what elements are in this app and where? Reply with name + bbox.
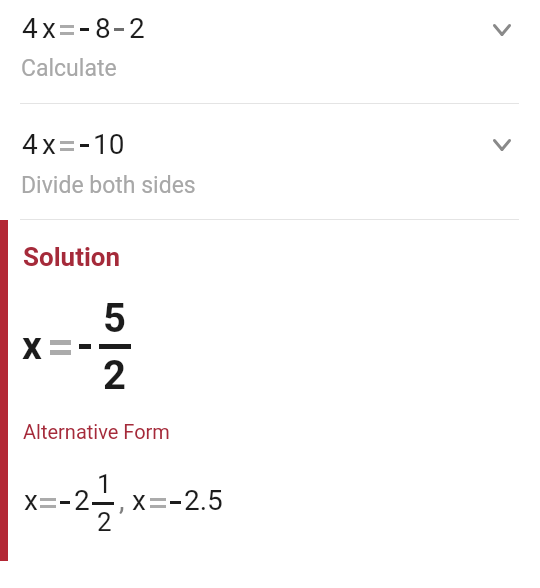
- staticText: ,: [119, 484, 125, 517]
- staticText: x: [24, 484, 38, 517]
- staticText: 2: [103, 352, 126, 399]
- staticText: Calculate: [21, 55, 117, 82]
- staticText: 10: [93, 128, 125, 161]
- staticText: x: [42, 128, 56, 161]
- staticText: 5: [103, 295, 126, 342]
- staticText: 4: [22, 12, 38, 45]
- button[interactable]: Step 4x = -10, Divide both sides: [0, 104, 540, 219]
- staticText: 2: [97, 507, 112, 537]
- staticText: 1: [97, 469, 112, 499]
- staticText: 2.5: [184, 484, 223, 517]
- staticText: Alternative Form: [23, 420, 170, 443]
- staticText: x: [22, 323, 42, 369]
- staticText: Divide both sides: [21, 172, 196, 199]
- staticText: 2: [129, 12, 145, 45]
- staticText: 2: [74, 484, 90, 517]
- staticText: Solution: [23, 242, 121, 272]
- staticText: x: [42, 12, 56, 45]
- staticText: 4: [22, 128, 38, 161]
- button[interactable]: Step 4x = -8 - 2, Calculate: [0, 0, 540, 103]
- staticText: 8: [95, 12, 111, 45]
- staticText: x: [132, 484, 146, 517]
